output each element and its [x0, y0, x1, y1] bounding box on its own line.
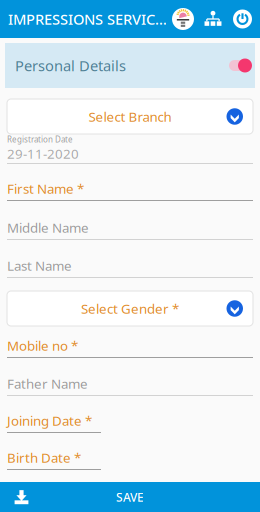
staticText: SAVE — [116, 489, 144, 505]
staticText: Middle Name — [7, 219, 89, 236]
button[interactable]: Joining Date * — [7, 396, 253, 433]
staticText: Mobile no * — [7, 337, 78, 354]
button[interactable]: Select Gender * — [7, 291, 253, 326]
button[interactable]: Company logo — [169, 8, 199, 30]
button[interactable]: SAVE — [0, 482, 260, 512]
button[interactable]: Birth Date * — [7, 433, 253, 470]
button[interactable]: Select Branch — [7, 99, 253, 134]
staticText: 29-11-2020 — [7, 145, 79, 162]
staticText: Last Name — [7, 257, 72, 274]
staticText: Personal Details — [15, 56, 126, 75]
staticText: Birth Date * — [7, 449, 81, 466]
button[interactable]: Log out — [228, 9, 257, 28]
staticText: Select Gender * — [81, 300, 179, 317]
staticText: Registration Date — [7, 134, 73, 145]
staticText: IMPRESSIONS SERVIC… — [8, 9, 167, 29]
button[interactable]: First Name * — [7, 164, 253, 201]
button[interactable]: Middle Name — [7, 201, 253, 240]
staticText: Joining Date * — [7, 412, 92, 429]
button[interactable]: Registration Date — [7, 134, 253, 164]
staticText: Father Name — [7, 375, 88, 392]
staticText: Select Branch — [88, 108, 171, 125]
button[interactable]: Last Name — [7, 240, 253, 278]
button[interactable]: Father Name — [7, 358, 253, 396]
button[interactable]: Mobile no * — [7, 326, 253, 358]
button[interactable]: Organisation chart — [199, 10, 228, 28]
button[interactable]: Toggle Personal Details — [228, 55, 252, 75]
staticText: First Name * — [7, 180, 84, 197]
